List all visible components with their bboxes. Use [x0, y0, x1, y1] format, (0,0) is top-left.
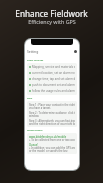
- staticText: + In addition, you can add the GPS and t…: [29, 146, 75, 149]
- staticText: Step 3 : Alternatively, you can fast-tra…: [29, 119, 75, 122]
- button[interactable]: follow the usage rules and alarm detail: [29, 89, 75, 93]
- staticText: Enhance Fieldwork: [15, 8, 88, 19]
- staticText: Mapping, service and materials data: [32, 65, 75, 69]
- staticText: you have a target.: [29, 106, 51, 109]
- staticText: Step 1 : Place your contact in the right…: [29, 103, 75, 106]
- staticText: Power Coverage: [27, 59, 44, 62]
- staticText: change time, tap and set alarm details: [32, 77, 75, 81]
- button[interactable]: push to document set and alarm detail: [29, 83, 75, 87]
- staticText: Step 2 : To determine guidance, click to…: [29, 111, 75, 114]
- staticText: Work: [27, 97, 33, 100]
- staticText: + To be collected from one or two accoun…: [29, 138, 75, 141]
- button[interactable]: current location, set an alarm note: [29, 71, 75, 75]
- staticText: www.bitdefender.co.uk/mobile: [29, 135, 67, 138]
- staticText: push to document set and alarm detail: [32, 83, 75, 87]
- staticText: or the model, or specify the key.: [29, 149, 68, 152]
- staticText: and the right direction of your right ke…: [29, 122, 75, 125]
- staticText: follow the usage rules and alarm detail: [32, 89, 75, 93]
- staticText: current location, set an alarm note: [32, 71, 75, 75]
- button[interactable]: Mapping, service and materials data: [29, 65, 75, 69]
- staticText: Smiling screens: [27, 129, 43, 132]
- staticText: Setting: [27, 49, 39, 54]
- staticText: window.: [29, 114, 40, 117]
- staticText: Queue!: [29, 143, 38, 146]
- button[interactable]: change time, tap and set alarm details: [29, 77, 75, 81]
- staticText: Efficiency with GPS: [28, 18, 76, 25]
- button[interactable]: Profile: [74, 50, 77, 53]
